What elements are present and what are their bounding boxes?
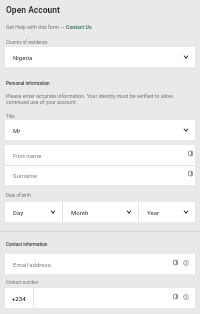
staticText: Personal information [6,81,50,86]
button[interactable]: Surname [5,165,195,185]
staticText: Day [13,209,24,216]
button[interactable]: Day [5,202,62,222]
staticText: Title [6,114,15,119]
staticText: Nigeria [13,54,33,61]
staticText: Country of residence [6,40,48,45]
staticText: First name [13,152,42,159]
staticText: Surname [13,172,37,179]
button[interactable]: Title [5,120,195,140]
button[interactable]: Country of residence [5,47,195,67]
staticText: +234 [12,295,26,302]
staticText: Month [71,209,89,216]
staticText: Year [147,209,160,216]
button[interactable]: Email address [5,254,195,274]
staticText: Open Account [6,5,60,15]
button[interactable]: Contact Us [66,24,92,30]
staticText: Email address [13,261,51,268]
button[interactable]: Month [63,202,138,222]
staticText: Get Help with this form — [6,24,66,30]
button[interactable]: Contact number [34,288,195,308]
button[interactable]: First name [5,145,195,165]
staticText: Date of birth [6,193,31,198]
staticText: Mr [13,127,21,134]
button[interactable]: Year [139,202,195,222]
button[interactable]: Country dialling code [5,288,33,308]
staticText: Please enter accurate information. Your … [6,93,178,106]
staticText: Contact information [6,242,48,247]
staticText: Contact number [6,280,39,285]
